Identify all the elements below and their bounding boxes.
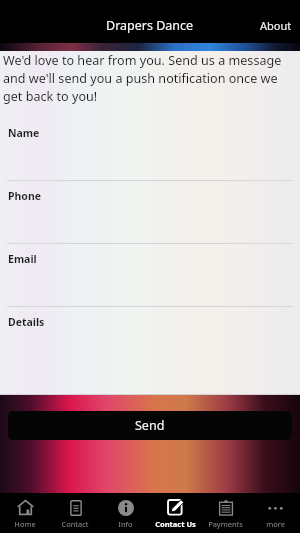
- staticText: Payments: [208, 519, 243, 529]
- button[interactable]: Send: [8, 411, 292, 440]
- staticText: Contact: [61, 519, 89, 529]
- button[interactable]: About: [252, 14, 300, 37]
- button[interactable]: Payments: [200, 493, 250, 533]
- staticText: Email: [8, 252, 37, 266]
- staticText: Details: [8, 315, 45, 329]
- button[interactable]: Phone: [0, 181, 300, 244]
- staticText: Drapers Dance: [106, 17, 194, 34]
- staticText: more: [266, 519, 285, 529]
- button[interactable]: Email: [0, 244, 300, 307]
- staticText: Contact Us: [155, 519, 196, 529]
- button[interactable]: Name: [0, 118, 300, 181]
- staticText: Phone: [8, 189, 42, 203]
- staticText: About: [260, 18, 292, 33]
- button[interactable]: Info: [100, 493, 150, 533]
- staticText: Home: [14, 519, 36, 529]
- button[interactable]: Contact: [50, 493, 100, 533]
- staticText: Info: [118, 519, 133, 529]
- button[interactable]: Details: [0, 307, 300, 370]
- staticText: We'd love to hear from you. Send us a me…: [3, 52, 300, 105]
- button[interactable]: Contact Us: [150, 493, 200, 533]
- staticText: Send: [135, 417, 165, 434]
- button[interactable]: more: [250, 493, 300, 533]
- staticText: Name: [8, 126, 40, 140]
- button[interactable]: Home: [0, 493, 50, 533]
